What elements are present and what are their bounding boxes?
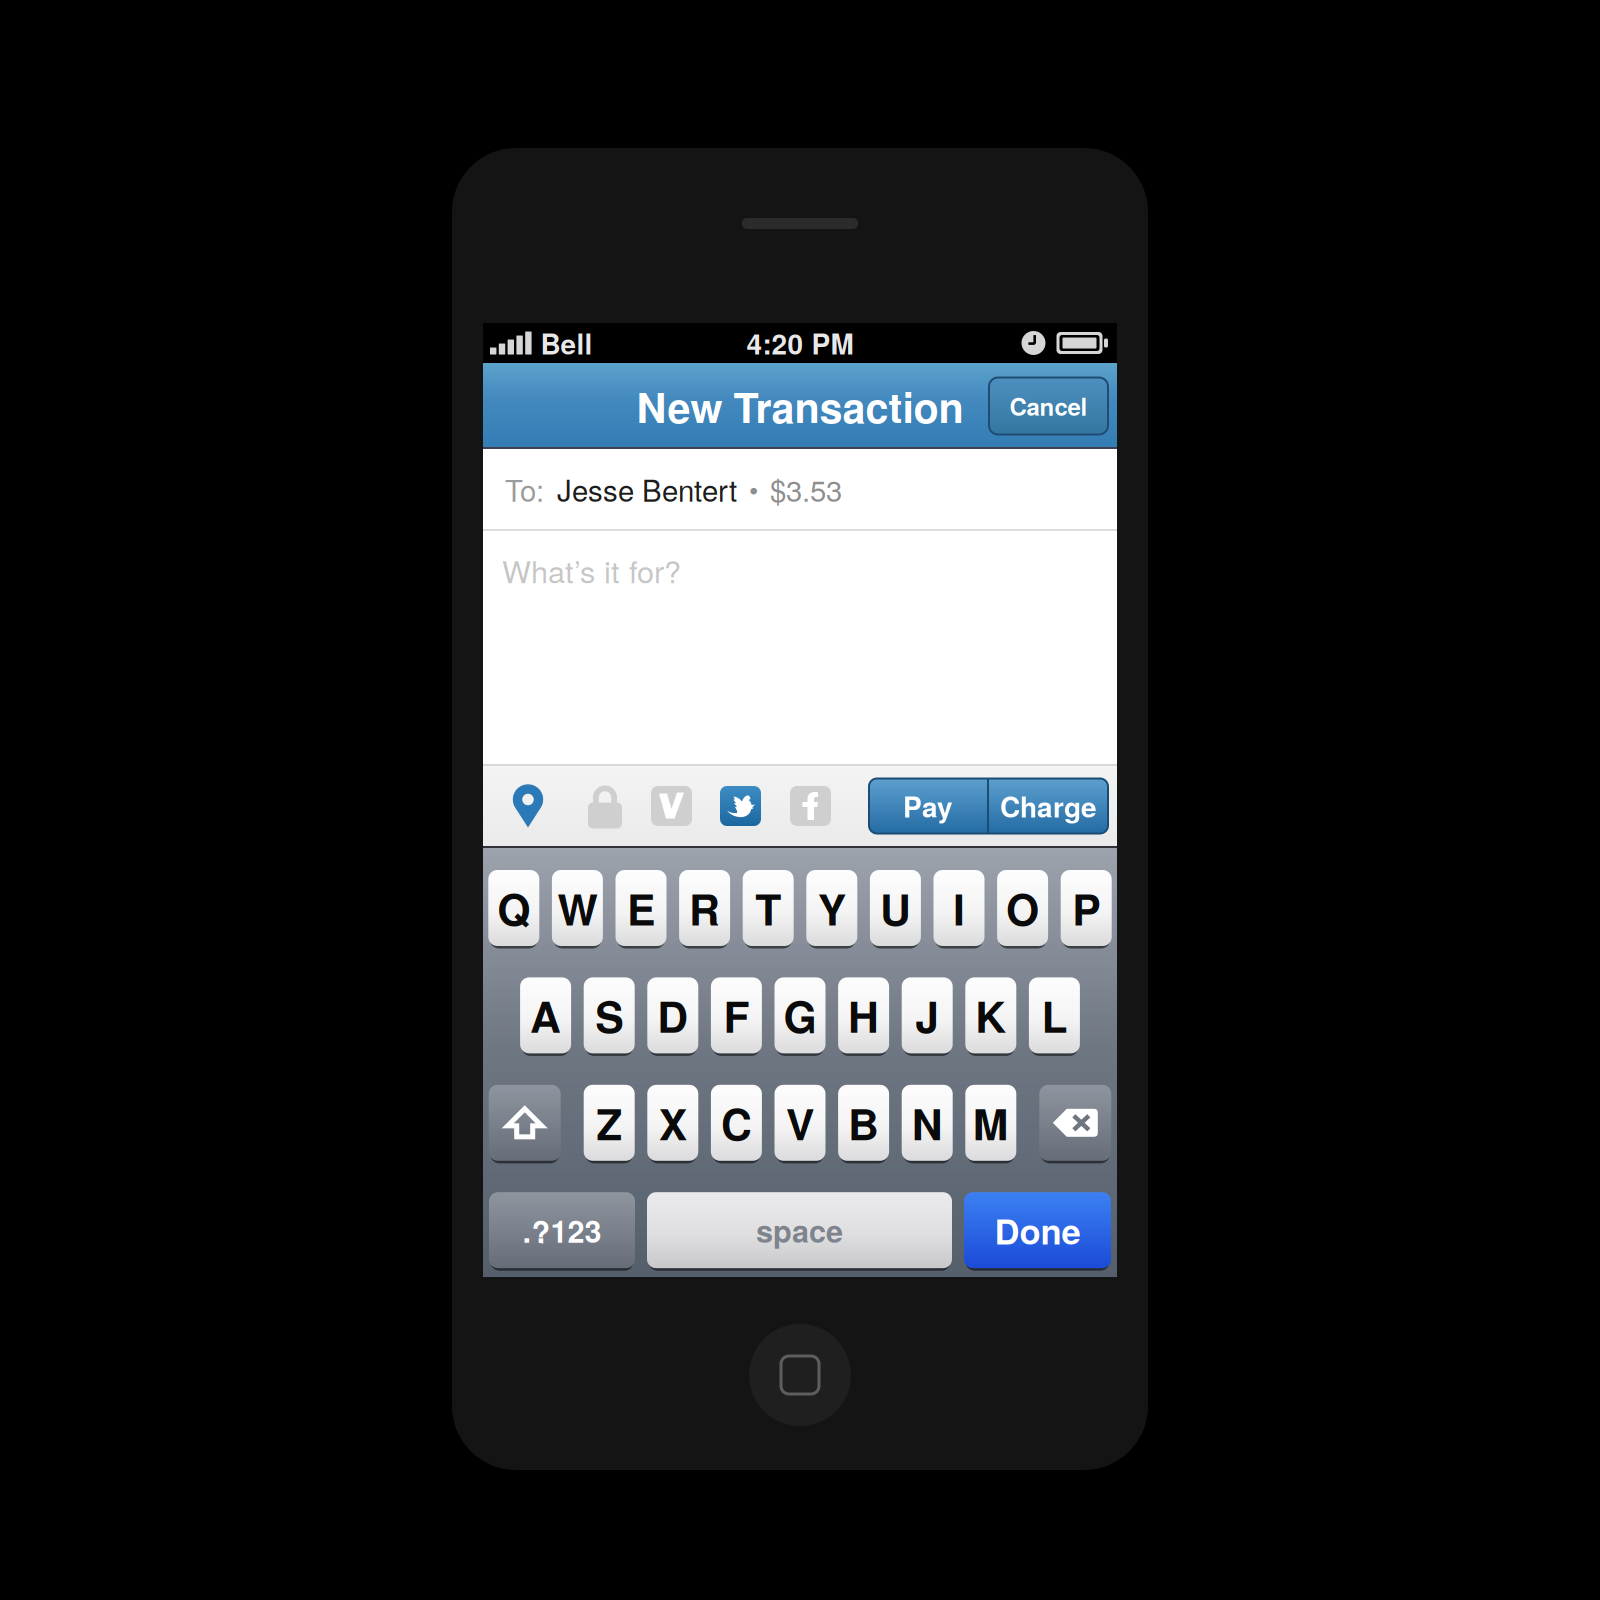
button[interactable]: U (870, 870, 921, 946)
staticText: space (756, 1208, 843, 1252)
button[interactable]: W (552, 870, 603, 946)
staticText: Q (497, 877, 530, 939)
staticText: P (1072, 877, 1100, 939)
button[interactable]: C (711, 1085, 762, 1161)
button[interactable]: J (902, 977, 953, 1053)
staticText: $3.53 (770, 468, 842, 510)
button[interactable]: Facebook (790, 786, 831, 826)
staticText: Y (818, 877, 846, 939)
staticText: What’s it for? (502, 548, 681, 592)
staticText: J (915, 985, 939, 1046)
staticText: H (848, 985, 879, 1046)
button[interactable]: I (933, 870, 984, 946)
staticText: N (912, 1092, 943, 1153)
staticText: Z (596, 1092, 622, 1153)
staticText: K (975, 985, 1006, 1046)
button[interactable]: X (647, 1085, 698, 1161)
staticText: C (721, 1092, 752, 1153)
staticText: G (783, 985, 816, 1046)
button[interactable]: N (902, 1085, 953, 1161)
button[interactable]: space (647, 1192, 952, 1268)
button[interactable]: .?123 (489, 1192, 635, 1268)
staticText: S (595, 985, 623, 1046)
staticText: Pay (903, 786, 953, 826)
staticText: • (749, 470, 758, 508)
staticText: M (973, 1092, 1009, 1153)
staticText: T (755, 877, 781, 939)
button[interactable]: A (520, 977, 571, 1053)
staticText: To: (505, 468, 544, 510)
button[interactable]: L (1029, 977, 1080, 1053)
staticText: F (723, 985, 749, 1046)
staticText: Jesse Bentert (557, 468, 737, 510)
button[interactable]: R (679, 870, 730, 946)
staticText: New Transaction (636, 376, 963, 436)
button[interactable]: Venmo (651, 786, 692, 826)
staticText: A (530, 985, 561, 1046)
button[interactable]: Private (588, 783, 622, 828)
button[interactable]: Shift (489, 1085, 561, 1161)
staticText: L (1041, 985, 1067, 1046)
button[interactable]: E (615, 870, 666, 946)
staticText: W (557, 877, 597, 939)
button[interactable]: M (965, 1085, 1016, 1161)
button[interactable]: Done (964, 1192, 1111, 1268)
button[interactable]: T (743, 870, 794, 946)
button[interactable]: V (774, 1085, 825, 1161)
button[interactable]: B (838, 1085, 889, 1161)
button[interactable]: Charge (989, 778, 1108, 833)
staticText: 4:20 PM (746, 323, 853, 363)
staticText: R (689, 877, 720, 939)
staticText: I (953, 877, 965, 939)
button[interactable]: Delete (1039, 1085, 1111, 1161)
button[interactable]: S (584, 977, 635, 1053)
button[interactable]: K (965, 977, 1016, 1053)
button[interactable]: Pay (869, 778, 987, 833)
staticText: X (659, 1092, 687, 1153)
staticText: V (786, 1092, 814, 1153)
staticText: Bell (541, 323, 593, 363)
button[interactable]: P (1061, 870, 1112, 946)
staticText: .?123 (522, 1208, 601, 1252)
button[interactable]: F (711, 977, 762, 1053)
button[interactable]: O (997, 870, 1048, 946)
staticText: U (880, 877, 911, 939)
button[interactable]: Location (511, 783, 545, 828)
button[interactable]: Cancel (989, 377, 1108, 434)
button[interactable]: Twitter (720, 786, 761, 826)
staticText: D (657, 985, 688, 1046)
button[interactable]: Q (488, 870, 539, 946)
button[interactable]: H (838, 977, 889, 1053)
staticText: Charge (1000, 786, 1097, 826)
button[interactable]: D (647, 977, 698, 1053)
staticText: Done (994, 1205, 1080, 1255)
button[interactable]: Z (584, 1085, 635, 1161)
button[interactable]: G (774, 977, 825, 1053)
staticText: E (627, 877, 655, 939)
button[interactable]: Y (806, 870, 857, 946)
staticText: Cancel (1009, 389, 1087, 423)
staticText: O (1006, 877, 1039, 939)
staticText: B (848, 1092, 879, 1153)
